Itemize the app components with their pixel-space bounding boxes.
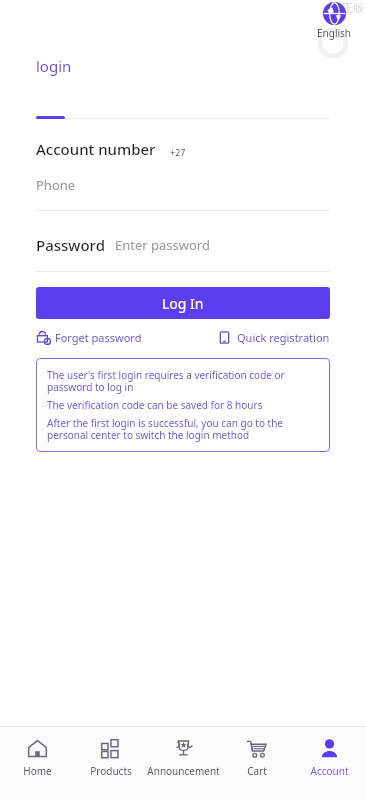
staticText: Quick registration [237, 330, 330, 345]
button[interactable]: Announcement [147, 727, 220, 778]
button[interactable]: Products [74, 727, 147, 778]
button[interactable]: Forget password [36, 330, 142, 345]
button[interactable]: Select language English [315, 2, 354, 40]
staticText: Announcement [147, 764, 220, 778]
staticText: The verification code can be saved for 8… [47, 398, 263, 412]
staticText: English [317, 26, 352, 40]
staticText: Account [310, 764, 349, 778]
staticText: Enter password [115, 236, 210, 254]
staticText: Forget password [55, 330, 142, 345]
button[interactable]: Quick registration [218, 330, 330, 345]
staticText: The user's first login requires a verifi… [47, 368, 319, 394]
staticText: +27 [170, 146, 186, 158]
staticText: Home [23, 764, 52, 778]
staticText: Cart [247, 764, 267, 778]
staticText: After the first login is successful, you… [47, 416, 319, 442]
button[interactable]: Log In [36, 287, 330, 319]
staticText: Log In [162, 294, 204, 313]
button[interactable]: login [36, 56, 72, 76]
staticText: Password [36, 235, 105, 255]
staticText: Account number [36, 139, 156, 159]
button[interactable]: Home [0, 727, 74, 778]
button[interactable]: Cart [220, 727, 293, 778]
button[interactable]: Account [293, 727, 366, 778]
staticText: Products [90, 764, 132, 778]
staticText: 正版 [342, 1, 364, 15]
staticText: Phone [36, 176, 76, 194]
staticText: login [36, 56, 72, 76]
